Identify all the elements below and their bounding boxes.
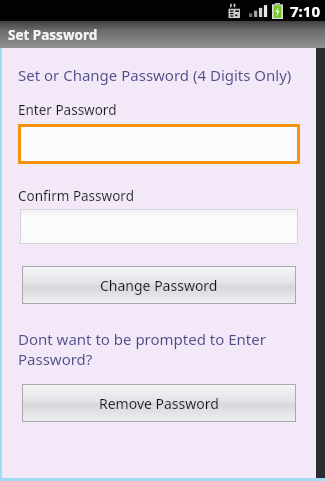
button[interactable]: Remove Password: [23, 385, 295, 421]
staticText: Set or Change Password (4 Digits Only): [18, 65, 292, 85]
staticText: Enter Password: [18, 101, 117, 119]
staticText: 7:10: [290, 1, 320, 21]
staticText: Dont want to be prompted to Enter Passwo…: [18, 329, 292, 369]
staticText: Remove Password: [99, 394, 219, 413]
staticText: Change Password: [100, 276, 218, 295]
staticText: Confirm Password: [18, 187, 134, 205]
staticText: Set Password: [8, 26, 98, 44]
button[interactable]: Change Password: [23, 267, 295, 303]
